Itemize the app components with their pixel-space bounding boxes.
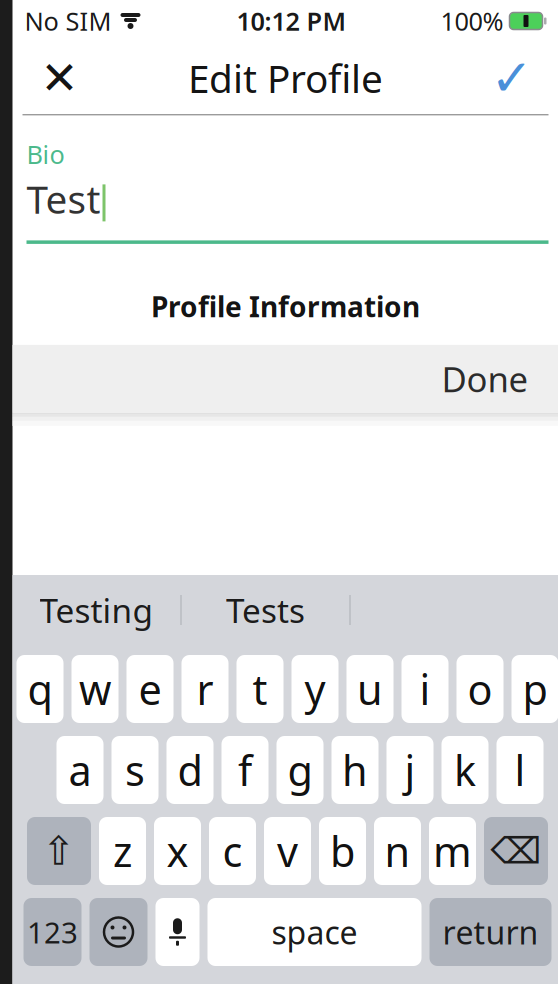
button[interactable]: r	[181, 655, 228, 723]
button[interactable]: u	[346, 655, 393, 723]
staticText: b	[330, 824, 355, 878]
staticText: u	[357, 662, 383, 716]
staticText: Testing	[39, 588, 153, 632]
button[interactable]: Delete	[484, 817, 548, 885]
staticText: f	[238, 743, 252, 797]
staticText: w	[79, 662, 111, 716]
staticText: Test	[26, 173, 100, 224]
staticText: ⌫	[490, 831, 541, 871]
button[interactable]: v	[264, 817, 311, 885]
staticText: t	[252, 662, 267, 716]
button[interactable]: j	[386, 736, 433, 804]
staticText: i	[419, 662, 430, 716]
button[interactable]: s	[111, 736, 158, 804]
staticText: n	[384, 824, 410, 878]
button[interactable]: Done	[425, 344, 544, 414]
staticText: r	[196, 662, 213, 716]
staticText: Done	[441, 356, 528, 402]
staticText: d	[177, 743, 202, 797]
staticText: 123	[27, 912, 78, 951]
button[interactable]: Tests	[181, 576, 349, 644]
button[interactable]: l	[496, 736, 543, 804]
staticText: Tests	[226, 588, 305, 632]
staticText: e	[138, 662, 161, 716]
staticText: Profile Information	[151, 288, 420, 325]
staticText: o	[467, 662, 492, 716]
button[interactable]: w	[71, 655, 118, 723]
button[interactable]: Testing	[12, 576, 180, 644]
staticText: 100%	[440, 4, 503, 38]
button[interactable]: g	[276, 736, 323, 804]
button[interactable]: b	[319, 817, 366, 885]
button[interactable]: 123	[23, 898, 81, 966]
staticText: z	[113, 824, 132, 878]
button[interactable]: f	[221, 736, 268, 804]
button[interactable]: Save	[474, 46, 548, 110]
staticText: g	[287, 743, 312, 797]
button[interactable]: return	[429, 898, 551, 966]
button[interactable]: z	[99, 817, 146, 885]
button[interactable]: n	[374, 817, 421, 885]
staticText: Bio	[26, 137, 64, 171]
button[interactable]: a	[56, 736, 103, 804]
staticText: ✕	[40, 52, 78, 104]
button[interactable]: d	[166, 736, 213, 804]
staticText: h	[342, 743, 368, 797]
staticText: s	[125, 743, 145, 797]
staticText: Edit Profile	[188, 52, 383, 104]
button[interactable]: x	[154, 817, 201, 885]
staticText: c	[222, 824, 242, 878]
button[interactable]: Emoji	[89, 898, 147, 966]
button[interactable]: t	[236, 655, 283, 723]
button[interactable]: m	[429, 817, 476, 885]
staticText: l	[514, 743, 525, 797]
staticText: x	[166, 824, 188, 878]
button[interactable]: h	[331, 736, 378, 804]
staticText: p	[522, 662, 547, 716]
staticText: q	[27, 662, 52, 716]
staticText: No SIM	[24, 4, 111, 38]
button[interactable]: i	[401, 655, 448, 723]
staticText: ✓	[490, 49, 532, 107]
staticText: m	[433, 824, 472, 878]
button[interactable]: k	[441, 736, 488, 804]
staticText: v	[277, 824, 298, 878]
staticText: y	[304, 662, 325, 716]
staticText: j	[404, 743, 415, 797]
button[interactable]: Dictation	[155, 898, 199, 966]
staticText: return	[442, 911, 538, 953]
staticText: space	[271, 911, 357, 953]
staticText: k	[454, 743, 476, 797]
staticText: ⇧	[42, 828, 76, 874]
button[interactable]: Close	[22, 46, 96, 110]
button[interactable]: p	[511, 655, 558, 723]
button[interactable]: y	[291, 655, 338, 723]
button[interactable]: e	[126, 655, 173, 723]
button[interactable]: Shift	[27, 817, 91, 885]
staticText: a	[68, 743, 91, 797]
staticText: 10:12 PM	[236, 4, 346, 38]
button[interactable]: q	[16, 655, 63, 723]
button[interactable]: space	[207, 898, 421, 966]
button[interactable]: c	[209, 817, 256, 885]
button[interactable]: o	[456, 655, 503, 723]
